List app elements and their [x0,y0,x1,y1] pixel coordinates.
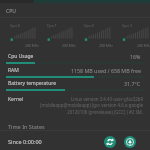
staticText: CPU [6,8,16,15]
staticText: Kernel [8,96,24,103]
staticText: 288 MHz [25,43,39,48]
staticText: Time In States [8,123,45,130]
staticText: Cpu Usage [8,53,34,60]
staticText: RAM [8,67,19,74]
staticText: Cpu 2 [84,23,94,28]
staticText: Cpu 1 [47,23,57,28]
staticText: 31.7°C [124,80,141,87]
staticText: Since 0:00:00 [8,138,42,145]
staticText: Battery temperature [8,80,57,87]
staticText: Linux version 3.4.43-user-gfac32b9 (mobi… [38,96,143,116]
staticText: Cpu 0 [10,23,20,28]
staticText: 16% [130,53,141,60]
staticText: 288 MHz [137,43,150,48]
button[interactable]: Refresh [104,136,116,148]
staticText: 288 MHz [99,43,113,48]
button[interactable]: Reset [124,136,136,148]
staticText: 288 MHz [62,43,76,48]
staticText: Cpu 3 [122,23,132,28]
staticText: 1158 MB used / 658 MB free [71,67,141,74]
